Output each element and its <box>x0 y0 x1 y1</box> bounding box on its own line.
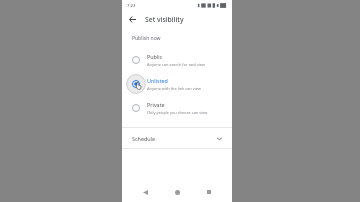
button[interactable]: Unlisted <box>122 72 232 96</box>
staticText: Set visibility <box>145 15 184 24</box>
staticText: Anyone can search for and view <box>147 62 205 67</box>
staticText: Public <box>147 53 163 60</box>
button[interactable]: Public <box>122 48 232 72</box>
staticText: Publish now <box>132 35 161 42</box>
staticText: Only people you choose can view <box>147 110 208 115</box>
button[interactable]: Home <box>168 183 186 201</box>
staticText: Private <box>147 101 165 108</box>
staticText: Schedule <box>132 135 155 142</box>
button[interactable]: Schedule <box>122 128 232 148</box>
staticText: Anyone with the link can view <box>147 86 201 91</box>
button[interactable]: Private <box>122 96 232 120</box>
staticText: Unlisted <box>147 77 168 84</box>
button[interactable]: Back <box>136 183 154 201</box>
staticText: 7:23 <box>127 3 136 9</box>
button[interactable]: Navigate up <box>126 13 139 26</box>
button[interactable]: Recent apps <box>200 183 218 201</box>
